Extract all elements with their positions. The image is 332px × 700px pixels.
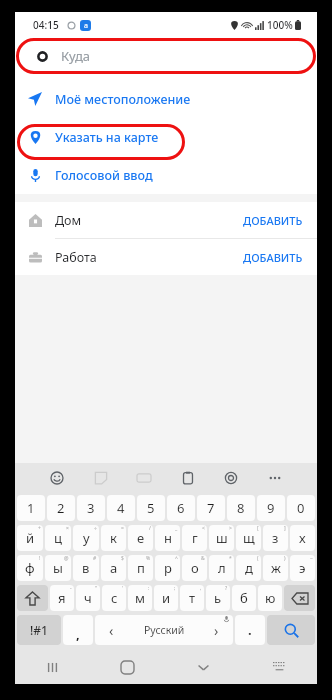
- button[interactable]: 5: [137, 495, 165, 521]
- button[interactable]: +: [17, 525, 43, 551]
- button[interactable]: ': [102, 585, 126, 611]
- button[interactable]: ": [76, 585, 100, 611]
- button[interactable]: /: [128, 525, 153, 551]
- button[interactable]: 3: [77, 495, 105, 521]
- button[interactable]: Stickers: [90, 467, 112, 489]
- staticText: л: [218, 559, 226, 577]
- staticText: _: [175, 525, 178, 532]
- staticText: #: [93, 555, 97, 562]
- button[interactable]: Работа: [15, 239, 317, 275]
- button[interactable]: ÷: [73, 525, 99, 551]
- staticText: $: [121, 555, 124, 562]
- staticText: 6: [177, 499, 185, 517]
- staticText: н: [164, 529, 172, 547]
- button[interactable]: Голосовой ввод: [15, 156, 317, 194]
- staticText: ;: [174, 585, 176, 592]
- staticText: щ: [243, 529, 255, 547]
- button[interactable]: Backspace: [284, 585, 315, 611]
- button[interactable]: $: [101, 555, 126, 581]
- button[interactable]: 0: [287, 495, 315, 521]
- staticText: &: [201, 555, 205, 562]
- staticText: !#1: [30, 622, 48, 638]
- button[interactable]: 7: [197, 495, 225, 521]
- staticText: +: [38, 525, 41, 532]
- button[interactable]: Keyboard layout: [241, 650, 317, 684]
- staticText: ÷: [94, 525, 97, 532]
- button[interactable]: Recents: [15, 650, 90, 684]
- button[interactable]: 1: [17, 495, 45, 521]
- staticText: ю: [265, 589, 276, 607]
- button[interactable]: ~: [290, 555, 315, 581]
- staticText: Работа: [55, 249, 97, 266]
- button[interactable]: ;: [154, 585, 178, 611]
- staticText: ДОБАВИТЬ: [243, 213, 303, 228]
- button[interactable]: -: [50, 585, 74, 611]
- staticText: р: [164, 559, 172, 577]
- button[interactable]: ‹: [95, 615, 233, 645]
- staticText: ]: [284, 525, 286, 532]
- staticText: 7: [207, 499, 215, 517]
- button[interactable]: ,: [180, 585, 204, 611]
- button[interactable]: >: [209, 525, 234, 551]
- button[interactable]: _: [155, 525, 180, 551]
- button[interactable]: 6: [167, 495, 195, 521]
- button[interactable]: !: [17, 555, 43, 581]
- staticText: п: [137, 559, 145, 577]
- button[interactable]: (: [236, 555, 261, 581]
- staticText: Куда: [61, 47, 91, 65]
- staticText: 4: [117, 499, 125, 517]
- staticText: у: [83, 529, 90, 547]
- button[interactable]: Clipboard: [177, 467, 199, 489]
- button[interactable]: Shift: [17, 585, 48, 611]
- staticText: с: [111, 589, 118, 607]
- button[interactable]: ): [263, 555, 288, 581]
- button[interactable]: ^: [155, 555, 180, 581]
- button[interactable]: Моё местоположение: [15, 80, 317, 118]
- button[interactable]: ]: [263, 525, 288, 551]
- button[interactable]: ю: [258, 585, 282, 611]
- staticText: %: [146, 555, 151, 562]
- button[interactable]: .: [235, 615, 265, 645]
- button[interactable]: Home: [90, 650, 165, 684]
- staticText: 3: [87, 499, 95, 517]
- button[interactable]: Дом: [15, 202, 317, 238]
- button[interactable]: б: [232, 585, 256, 611]
- staticText: е: [137, 529, 145, 547]
- staticText: 2: [57, 499, 65, 517]
- staticText: 5: [147, 499, 155, 517]
- button[interactable]: &: [182, 555, 207, 581]
- button[interactable]: More: [264, 467, 286, 489]
- button[interactable]: !#1: [17, 615, 61, 645]
- button[interactable]: 9: [257, 495, 285, 521]
- button[interactable]: =: [101, 525, 126, 551]
- button[interactable]: 4: [107, 495, 135, 521]
- staticText: :: [148, 585, 150, 592]
- button[interactable]: Emoji: [46, 467, 68, 489]
- button[interactable]: %: [128, 555, 153, 581]
- button[interactable]: Search: [267, 615, 315, 645]
- staticText: -: [70, 585, 72, 592]
- button[interactable]: GIF: [133, 467, 155, 489]
- staticText: ы: [53, 559, 63, 577]
- button[interactable]: 8: [227, 495, 255, 521]
- button[interactable]: 2: [47, 495, 75, 521]
- button[interactable]: #: [73, 555, 99, 581]
- button[interactable]: <: [182, 525, 207, 551]
- button[interactable]: Settings: [220, 467, 242, 489]
- button[interactable]: *: [209, 555, 234, 581]
- button[interactable]: х: [290, 525, 315, 551]
- staticText: г: [192, 529, 198, 547]
- button[interactable]: Hide keyboard: [165, 650, 241, 684]
- button[interactable]: ?: [206, 585, 230, 611]
- button[interactable]: [: [236, 525, 261, 551]
- button[interactable]: @: [45, 555, 71, 581]
- staticText: 9: [267, 499, 275, 517]
- button[interactable]: Куда: [21, 38, 311, 74]
- staticText: а: [110, 559, 118, 577]
- button[interactable]: ,: [63, 615, 93, 645]
- button[interactable]: ×: [45, 525, 71, 551]
- staticText: Моё местоположение: [55, 91, 191, 108]
- button[interactable]: Указать на карте: [15, 118, 317, 156]
- staticText: м: [135, 589, 145, 607]
- button[interactable]: :: [128, 585, 152, 611]
